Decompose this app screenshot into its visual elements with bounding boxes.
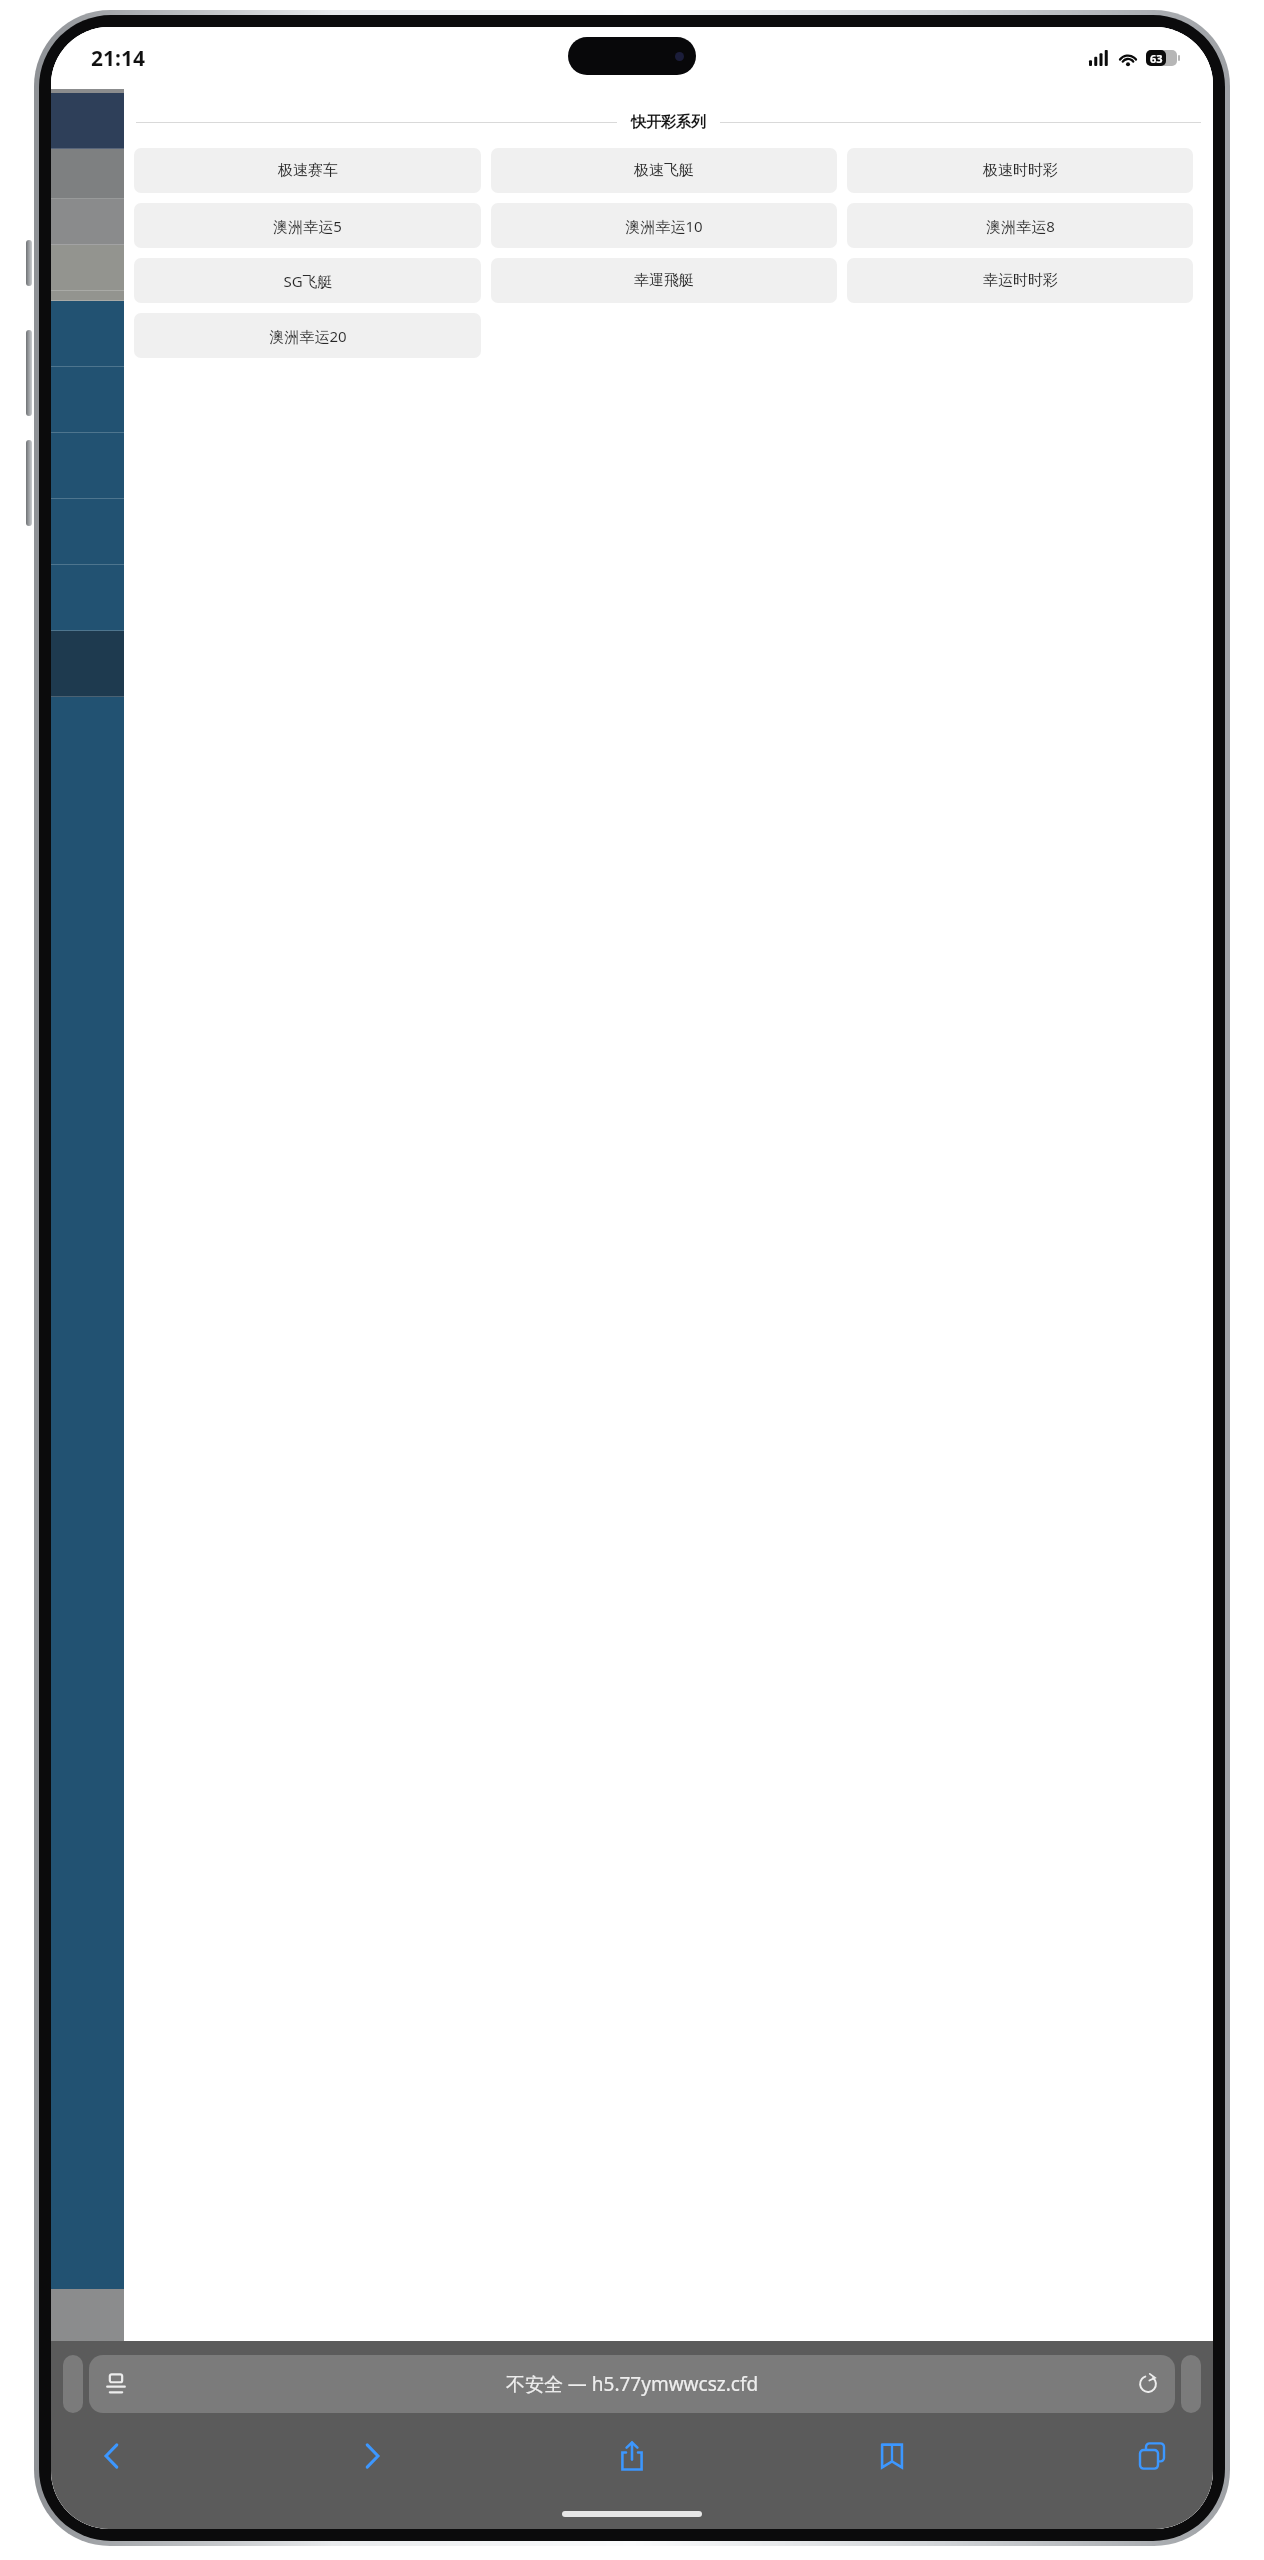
staticText: 极速时时彩 [983, 161, 1058, 180]
staticText: 338099 [595, 207, 671, 237]
button[interactable]: Share [605, 2429, 659, 2483]
staticText: 澳洲幸运10 [625, 216, 703, 236]
button[interactable]: 极速飞艇 [491, 148, 837, 193]
staticText: 澳洲幸运8 [986, 216, 1055, 236]
staticText: 澳洲幸运20 [269, 326, 347, 346]
button[interactable]: Tabs [1125, 2429, 1179, 2483]
button[interactable]: 幸運飛艇 [491, 258, 837, 303]
button[interactable]: 极速赛车 [134, 148, 481, 193]
staticText: 21:14 [91, 44, 145, 73]
other: Reload [1137, 2373, 1159, 2395]
button[interactable]: Forward [345, 2429, 399, 2483]
staticText: 338099 [595, 253, 671, 283]
button[interactable]: Bookmarks [865, 2429, 919, 2483]
staticText: 幸運飛艇 [634, 271, 694, 290]
button[interactable]: Page settings [89, 2355, 1175, 2413]
staticText: 快开 [615, 163, 651, 186]
button[interactable]: 极速时时彩 [847, 148, 1193, 193]
other: Page settings [105, 2373, 127, 2395]
staticText: 幸运时时彩 [983, 271, 1058, 290]
button[interactable]: SG飞艇 [134, 258, 481, 303]
staticText: 极速赛车 [278, 161, 338, 180]
button[interactable]: 澳洲幸运20 [134, 313, 481, 358]
button[interactable]: 澳洲幸运10 [491, 203, 837, 248]
button[interactable]: 幸运时时彩 [847, 258, 1193, 303]
staticText: 极速飞艇 [634, 161, 694, 180]
staticText: 澳洲幸运5 [273, 216, 342, 236]
button[interactable]: 澳洲幸运8 [847, 203, 1193, 248]
staticText: SG飞艇 [283, 271, 333, 291]
staticText: 不安全 — h5.77ymwwcsz.cfd [127, 2371, 1137, 2397]
button[interactable]: Back [85, 2429, 139, 2483]
staticText: 快开彩系列 [631, 113, 706, 132]
button[interactable]: 澳洲幸运5 [134, 203, 481, 248]
staticText: 极速赛车 [593, 109, 673, 134]
staticText: 63 [1150, 51, 1163, 66]
